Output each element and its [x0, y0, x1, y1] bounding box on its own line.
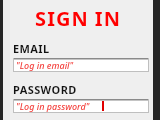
- staticText: "Log in email": [16, 59, 74, 71]
- button[interactable]: Password input: [13, 99, 149, 113]
- staticText: EMAIL: [13, 41, 50, 56]
- staticText: PASSWORD: [13, 82, 77, 97]
- button[interactable]: Email input: [13, 58, 149, 72]
- staticText: SIGN IN: [3, 5, 153, 32]
- staticText: "Log in password": [16, 100, 90, 112]
